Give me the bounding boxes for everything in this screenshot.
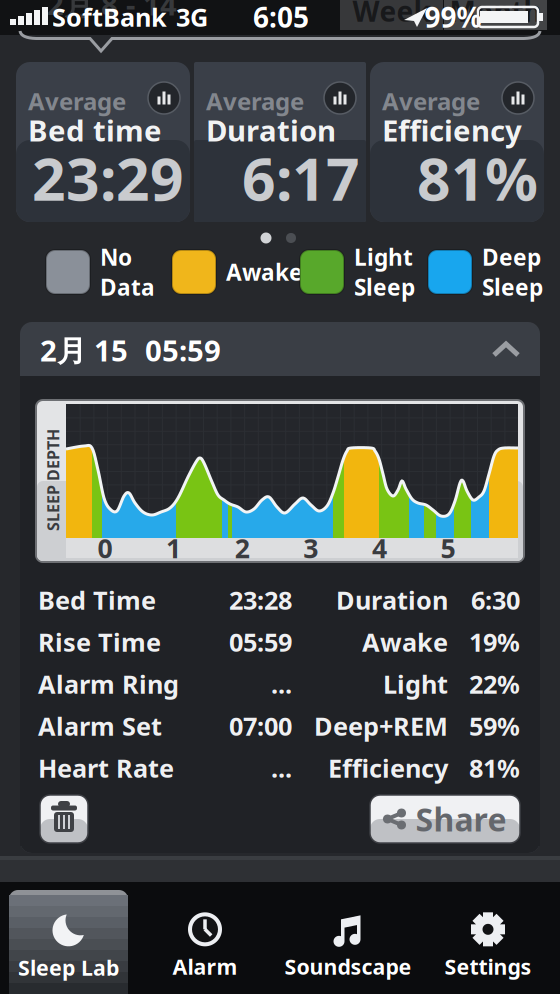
staticText: 0 bbox=[97, 530, 112, 566]
staticText: Rise Time bbox=[38, 625, 161, 659]
button[interactable]: Delete bbox=[40, 795, 88, 843]
button[interactable]: Week bbox=[340, 0, 443, 30]
button[interactable]: Sleep Lab bbox=[9, 890, 128, 994]
button[interactable]: Share bbox=[370, 795, 520, 843]
staticText: Light bbox=[383, 667, 448, 701]
staticText: Month bbox=[449, 0, 541, 30]
staticText: 23:28 bbox=[229, 583, 292, 617]
staticText: Sleep bbox=[482, 272, 543, 302]
staticText: Light bbox=[354, 242, 413, 272]
staticText: Efficiency bbox=[328, 751, 448, 785]
staticText: 07:00 bbox=[229, 709, 292, 743]
staticText: Awake bbox=[226, 257, 303, 287]
staticText: Week bbox=[352, 0, 430, 30]
staticText: Duration bbox=[206, 110, 336, 149]
staticText: 05:59 bbox=[145, 330, 221, 369]
staticText: Alarm bbox=[172, 952, 237, 981]
button[interactable]: Month bbox=[444, 0, 547, 30]
staticText: Deep+REM bbox=[314, 709, 448, 743]
staticText: 3G bbox=[176, 0, 208, 34]
button[interactable]: Statistics bbox=[148, 82, 180, 114]
staticText: 22% bbox=[469, 667, 520, 701]
staticText: Sleep Lab bbox=[18, 953, 119, 982]
staticText: Share bbox=[415, 798, 506, 840]
staticText: Bed Time bbox=[38, 583, 156, 617]
staticText: ... bbox=[271, 751, 292, 785]
staticText: SoftBank bbox=[52, 0, 167, 34]
staticText: Average bbox=[28, 85, 126, 117]
staticText: 6:05 bbox=[253, 0, 309, 36]
button[interactable]: Alarm bbox=[135, 901, 275, 991]
button[interactable]: Statistics bbox=[502, 82, 534, 114]
staticText: Settings bbox=[444, 952, 531, 981]
staticText: Alarm Ring bbox=[38, 667, 179, 701]
staticText: 6:30 bbox=[471, 583, 520, 617]
button[interactable]: Soundscape bbox=[278, 901, 418, 991]
staticText: Duration bbox=[336, 583, 448, 617]
staticText: 2月 8 - 14 bbox=[47, 0, 177, 23]
button[interactable]: Settings bbox=[418, 901, 558, 991]
button[interactable]: Collapse bbox=[0, 0, 560, 994]
staticText: SLEEP DEPTH bbox=[2, 469, 104, 491]
staticText: 05:59 bbox=[229, 625, 292, 659]
staticText: 81% bbox=[469, 751, 520, 785]
staticText: 81% bbox=[417, 139, 538, 217]
staticText: 99% bbox=[424, 0, 481, 36]
staticText: Awake bbox=[362, 625, 448, 659]
staticText: Average bbox=[382, 85, 480, 117]
staticText: Data bbox=[100, 272, 155, 302]
staticText: 19% bbox=[469, 625, 520, 659]
staticText: 5 bbox=[440, 530, 455, 566]
staticText: 59% bbox=[469, 709, 520, 743]
staticText: 4 bbox=[372, 530, 387, 566]
staticText: Efficiency bbox=[382, 110, 522, 149]
staticText: 2 bbox=[235, 530, 250, 566]
button[interactable]: Statistics bbox=[324, 82, 356, 114]
staticText: No bbox=[100, 242, 132, 272]
staticText: ... bbox=[271, 667, 292, 701]
staticText: Deep bbox=[482, 242, 541, 272]
staticText: 2月 15 bbox=[40, 330, 128, 369]
staticText: Alarm Set bbox=[38, 709, 162, 743]
staticText: 6:17 bbox=[242, 139, 360, 217]
staticText: 1 bbox=[166, 530, 181, 566]
staticText: Sleep bbox=[354, 272, 415, 302]
staticText: 3 bbox=[303, 530, 318, 566]
staticText: Average bbox=[206, 85, 304, 117]
staticText: 23:29 bbox=[32, 139, 184, 217]
staticText: Heart Rate bbox=[38, 751, 174, 785]
staticText: Bed time bbox=[28, 110, 162, 149]
staticText: Soundscape bbox=[284, 952, 411, 981]
